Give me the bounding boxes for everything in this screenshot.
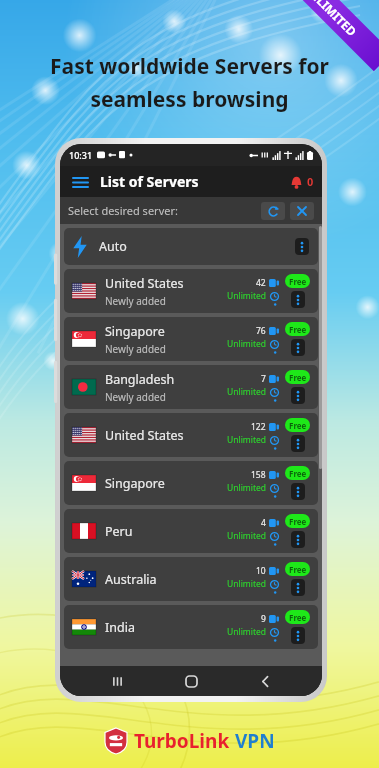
button[interactable]: Free: [285, 562, 310, 576]
button[interactable]: More options: [291, 483, 305, 500]
staticText: 76: [256, 325, 266, 337]
staticText: 122: [251, 421, 266, 433]
button[interactable]: Free: [285, 514, 310, 528]
staticText: 158: [251, 469, 266, 481]
staticText: seamless browsing: [90, 85, 289, 114]
button[interactable]: More options: [291, 387, 305, 404]
staticText: Free: [289, 372, 307, 383]
button[interactable]: TurboLink: [105, 728, 275, 754]
button[interactable]: Bangladesh: [64, 365, 318, 409]
button[interactable]: Free: [285, 370, 310, 384]
staticText: Free: [289, 468, 307, 479]
button[interactable]: Recent apps: [100, 666, 134, 696]
staticText: Fast worldwide Servers for: [50, 52, 329, 81]
button[interactable]: Refresh server list: [261, 202, 285, 220]
staticText: Unlimited: [227, 338, 267, 350]
staticText: 10: [256, 565, 266, 577]
button[interactable]: More options: [291, 579, 305, 596]
staticText: Unlimited: [227, 530, 267, 542]
staticText: Free: [289, 420, 307, 431]
staticText: TurboLink: [134, 728, 230, 754]
button[interactable]: More options: [295, 238, 309, 255]
button[interactable]: Free: [285, 418, 310, 432]
staticText: Singapore: [105, 323, 165, 340]
staticText: 10:31: [69, 149, 93, 161]
staticText: Bangladesh: [105, 371, 175, 388]
button[interactable]: Notifications: [285, 171, 307, 193]
staticText: Unlimited: [227, 434, 267, 446]
staticText: Newly added: [105, 390, 166, 404]
button[interactable]: Singapore: [64, 461, 318, 505]
staticText: 4: [261, 517, 266, 529]
staticText: Select desired server:: [68, 203, 178, 218]
staticText: Unlimited: [227, 290, 267, 302]
button[interactable]: Back: [248, 666, 282, 696]
staticText: India: [105, 619, 135, 636]
button[interactable]: More options: [291, 291, 305, 308]
button[interactable]: Free: [285, 274, 310, 288]
staticText: Unlimited: [227, 482, 267, 494]
staticText: Free: [289, 612, 307, 623]
button[interactable]: More options: [291, 435, 305, 452]
staticText: Free: [289, 276, 307, 287]
button[interactable]: Auto: [64, 228, 318, 265]
button[interactable]: Open navigation menu: [68, 170, 92, 194]
button[interactable]: Close: [290, 202, 314, 220]
button[interactable]: More options: [291, 627, 305, 644]
staticText: Free: [289, 324, 307, 335]
staticText: United States: [105, 275, 184, 292]
staticText: Unlimited: [227, 626, 267, 638]
staticText: 7: [261, 373, 266, 385]
staticText: UNLIMITED: [300, 0, 360, 39]
staticText: Newly added: [105, 342, 166, 356]
button[interactable]: United States: [64, 269, 318, 313]
staticText: Unlimited: [227, 386, 267, 398]
button[interactable]: Free: [285, 322, 310, 336]
button[interactable]: Singapore: [64, 317, 318, 361]
staticText: Free: [289, 516, 307, 527]
staticText: Peru: [105, 523, 133, 540]
button[interactable]: United States: [64, 413, 318, 457]
staticText: United States: [105, 427, 184, 444]
button[interactable]: Free: [285, 466, 310, 480]
staticText: 0: [307, 174, 314, 189]
button[interactable]: Free: [285, 610, 310, 624]
staticText: 9: [261, 613, 266, 625]
button[interactable]: Home: [174, 666, 208, 696]
button[interactable]: India: [64, 605, 318, 649]
staticText: VPN: [235, 728, 275, 754]
staticText: List of Servers: [100, 172, 199, 191]
staticText: Unlimited: [227, 578, 267, 590]
staticText: Australia: [105, 571, 157, 588]
button[interactable]: Peru: [64, 509, 318, 553]
staticText: Newly added: [105, 294, 166, 308]
button[interactable]: More options: [291, 339, 305, 356]
staticText: Singapore: [105, 475, 165, 492]
button[interactable]: More options: [291, 531, 305, 548]
staticText: 42: [256, 277, 266, 289]
staticText: Free: [289, 564, 307, 575]
staticText: Auto: [99, 238, 127, 255]
button[interactable]: Australia: [64, 557, 318, 601]
